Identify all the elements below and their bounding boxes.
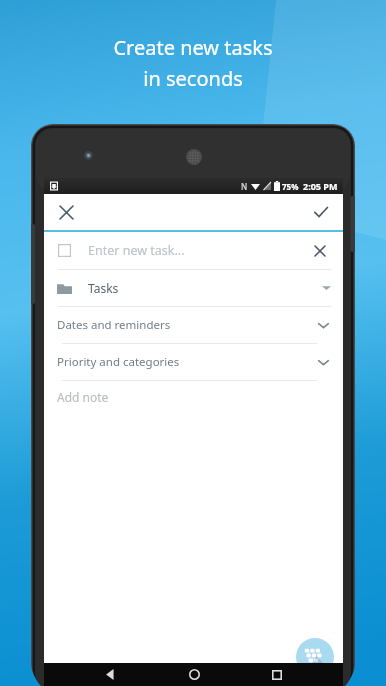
staticText: N — [241, 181, 248, 192]
button[interactable]: Tasks — [44, 270, 343, 306]
button[interactable]: Add note — [44, 381, 343, 413]
staticText: 75% — [282, 181, 299, 192]
button[interactable]: Close — [52, 198, 80, 226]
button[interactable]: Home — [177, 663, 211, 686]
staticText: Tasks — [88, 280, 119, 296]
staticText: Dates and reminders — [57, 317, 171, 333]
staticText: Enter new task... — [88, 242, 185, 259]
staticText: in seconds — [143, 65, 243, 92]
staticText: Add note — [57, 389, 109, 405]
button[interactable]: Priority and categories — [44, 344, 343, 380]
staticText: Priority and categories — [57, 354, 180, 370]
button[interactable]: Enter new task... — [44, 232, 343, 269]
staticText: 2:05 PM — [303, 180, 338, 192]
staticText: Create new tasks — [113, 34, 273, 61]
button[interactable]: Back — [93, 663, 127, 686]
button[interactable]: Clear text — [309, 240, 331, 262]
button[interactable]: Dates and reminders — [44, 307, 343, 343]
button[interactable]: BlackBerry Hub — [296, 638, 334, 676]
button[interactable]: Save task — [307, 198, 335, 226]
button[interactable]: Recent apps — [260, 663, 294, 686]
